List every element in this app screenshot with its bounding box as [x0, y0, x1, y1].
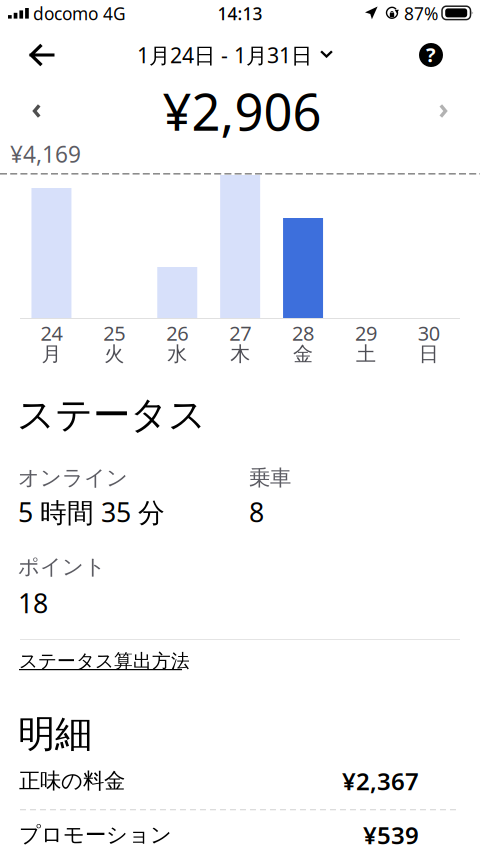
- staticText: 火: [104, 342, 124, 366]
- staticText: docomo: [33, 2, 98, 25]
- staticText: 日: [419, 342, 439, 366]
- staticText: 4G: [103, 2, 126, 25]
- staticText: 5 時間 35 分: [18, 494, 165, 530]
- staticText: 木: [230, 342, 250, 366]
- staticText: ¥2,906: [162, 77, 321, 145]
- staticText: 30: [418, 320, 440, 346]
- staticText: 月: [41, 342, 61, 366]
- staticText: ¥539: [363, 819, 419, 851]
- staticText: ステータス: [17, 392, 206, 438]
- staticText: ?: [426, 41, 436, 68]
- staticText: 土: [356, 342, 376, 366]
- staticText: ステータス算出方法: [19, 649, 190, 672]
- staticText: 24: [40, 320, 62, 346]
- staticText: 87%: [404, 2, 438, 25]
- staticText: 25: [103, 320, 125, 346]
- staticText: プロモーション: [19, 822, 172, 848]
- staticText: 正味の料金: [19, 768, 125, 794]
- staticText: 金: [293, 342, 313, 366]
- staticText: 乗車: [249, 465, 291, 491]
- button[interactable]: Back: [13, 32, 69, 78]
- button[interactable]: Previous week: [9, 85, 61, 137]
- staticText: 8: [249, 494, 264, 530]
- button[interactable]: Next week: [419, 85, 471, 137]
- staticText: 26: [166, 320, 188, 346]
- staticText: オンライン: [18, 465, 128, 491]
- button[interactable]: Help: [406, 32, 456, 78]
- button[interactable]: ステータス算出方法: [19, 650, 219, 678]
- button[interactable]: 1月24日 - 1月31日: [137, 32, 337, 78]
- staticText: 水: [167, 342, 187, 366]
- staticText: 29: [355, 320, 377, 346]
- staticText: ¥2,367: [342, 765, 419, 797]
- staticText: 18: [18, 585, 48, 621]
- staticText: 1月24日 - 1月31日: [137, 41, 312, 69]
- staticText: 14:13: [217, 2, 262, 25]
- staticText: 28: [292, 320, 314, 346]
- staticText: ¥4,169: [10, 139, 81, 169]
- staticText: 明細: [18, 711, 92, 757]
- staticText: 27: [229, 320, 251, 346]
- staticText: ポイント: [18, 554, 106, 580]
